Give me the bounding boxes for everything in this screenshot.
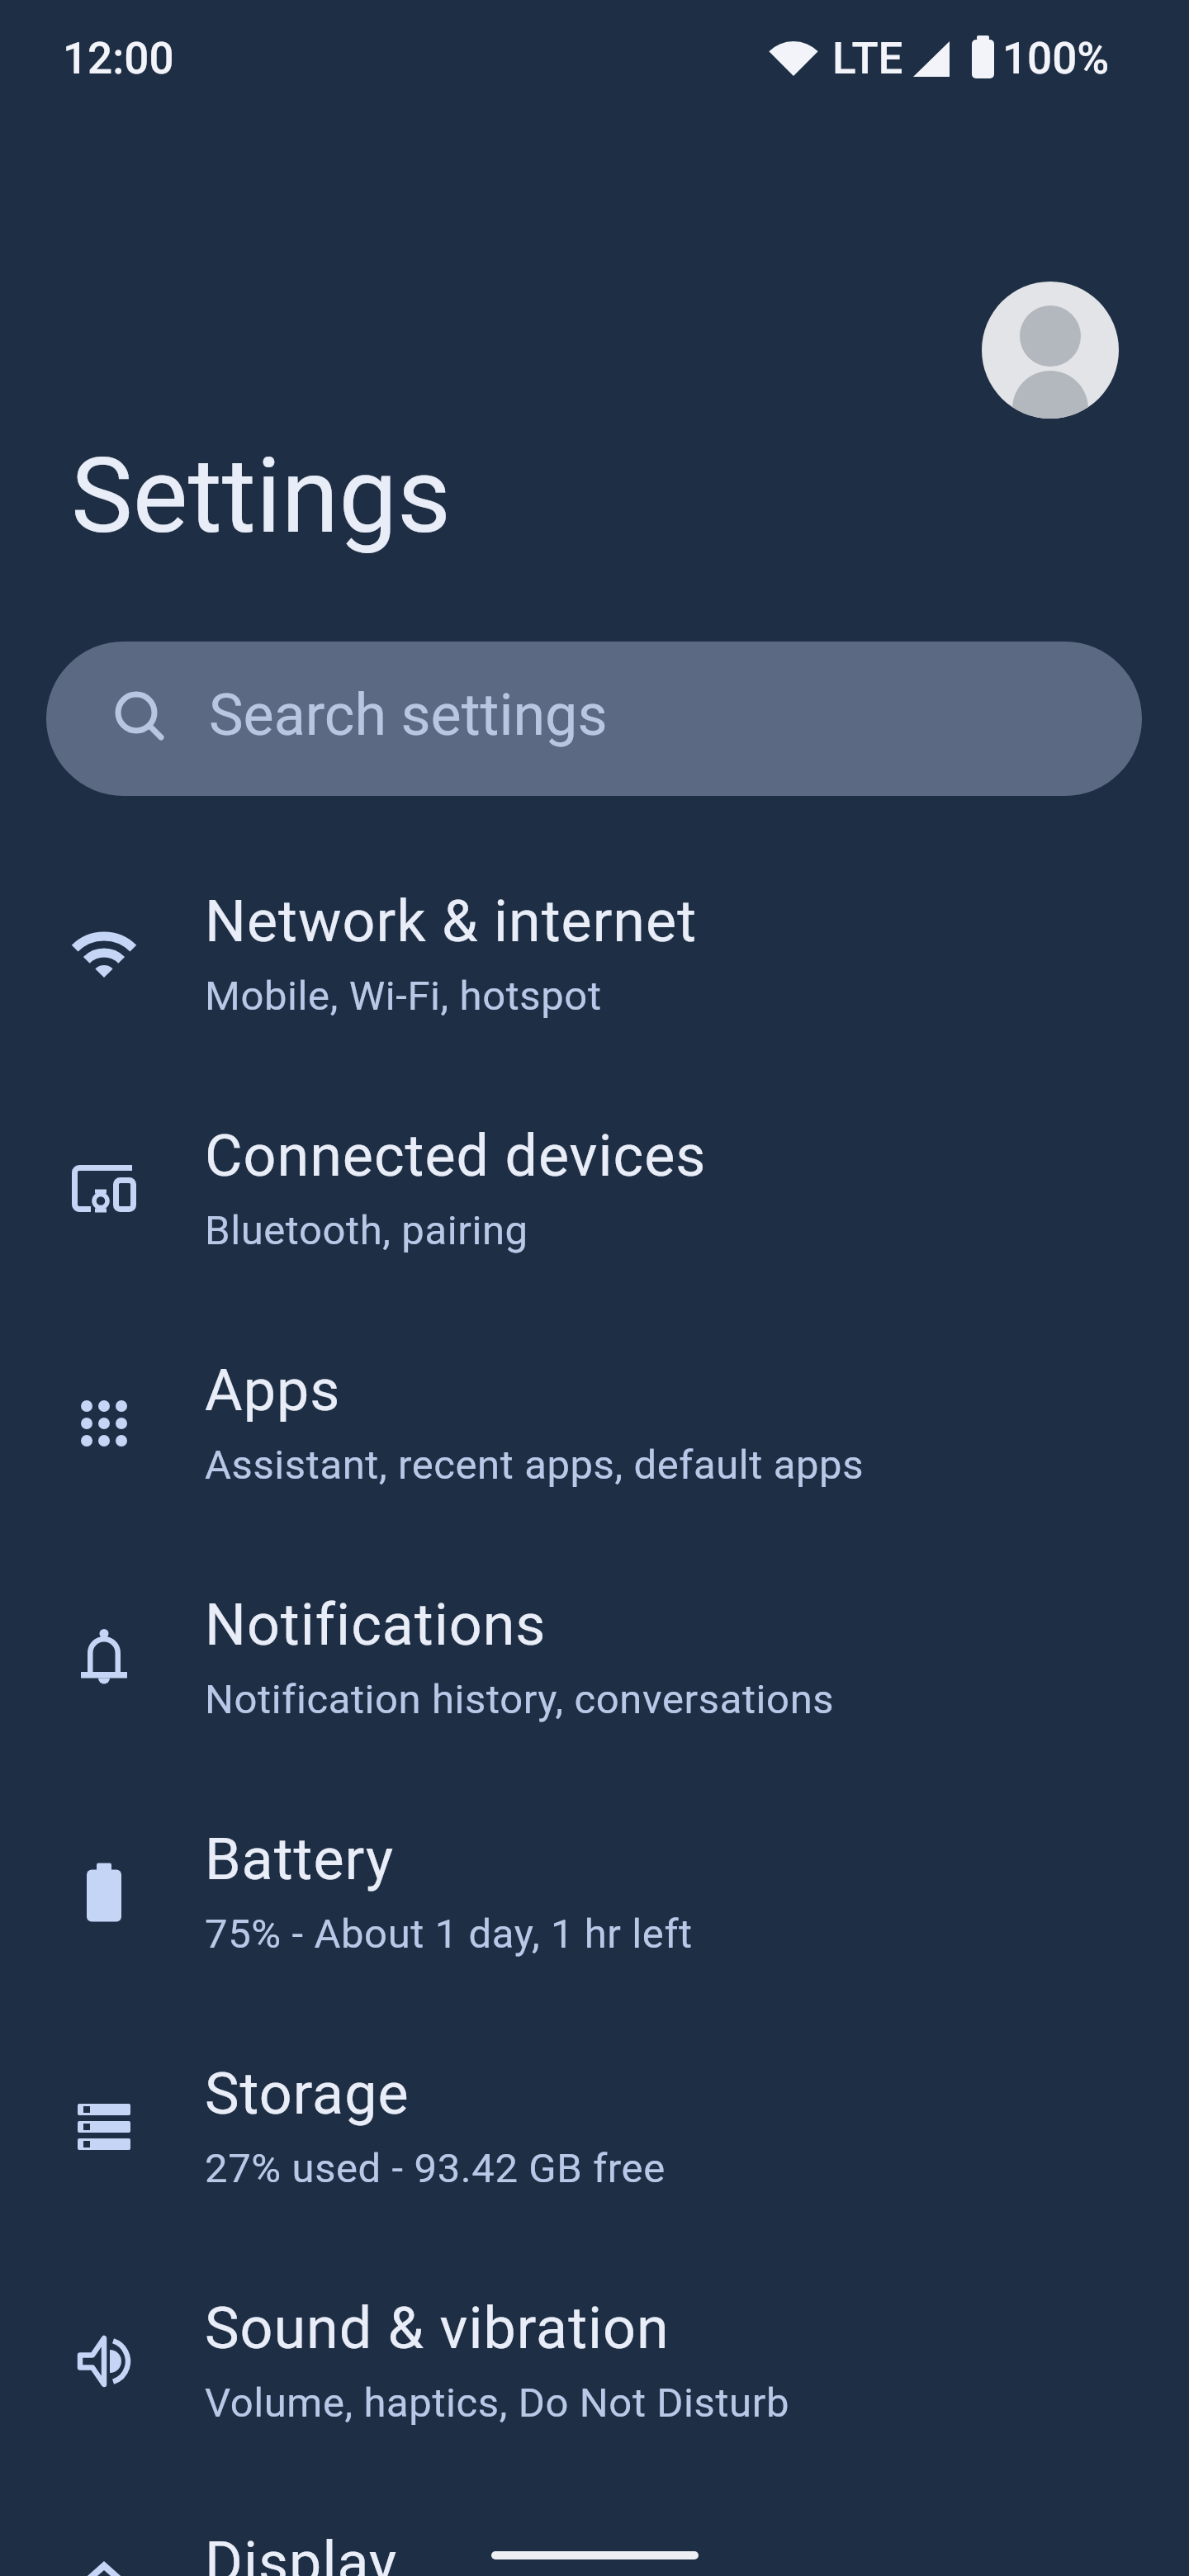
staticText: Apps (205, 1357, 341, 1424)
staticText: 75% - About 1 day, 1 hr left (205, 1911, 693, 1958)
staticText: Connected devices (205, 1122, 707, 1190)
button[interactable]: Notifications (0, 1541, 1189, 1775)
button[interactable]: Apps (0, 1306, 1189, 1541)
button[interactable]: Search settings (46, 642, 1142, 796)
button[interactable]: Storage (0, 2010, 1189, 2244)
staticText: 100% (1002, 33, 1110, 84)
staticText: Storage (205, 2060, 410, 2128)
staticText: LTE (832, 33, 903, 84)
button[interactable]: Display (0, 2479, 1189, 2576)
button[interactable] (982, 282, 1119, 419)
staticText: Notifications (205, 1591, 547, 1659)
staticText: Settings (71, 435, 452, 557)
staticText: Notification history, conversations (205, 1676, 835, 1723)
button[interactable]: Sound & vibration (0, 2244, 1189, 2479)
staticText: Mobile, Wi-Fi, hotspot (205, 973, 602, 1020)
staticText: 27% used - 93.42 GB free (205, 2145, 666, 2192)
button[interactable]: Connected devices (0, 1072, 1189, 1306)
staticText: Network & internet (205, 888, 698, 955)
staticText: Search settings (209, 681, 608, 749)
staticText: Volume, haptics, Do Not Disturb (205, 2379, 790, 2427)
staticText: Battery (205, 1825, 395, 1893)
staticText: Bluetooth, pairing (205, 1207, 528, 1254)
staticText: Display (205, 2529, 398, 2576)
button[interactable]: Network & internet (0, 837, 1189, 1072)
staticText: 12:00 (63, 33, 174, 84)
button[interactable]: Battery (0, 1775, 1189, 2010)
staticText: Sound & vibration (205, 2294, 670, 2362)
staticText: Assistant, recent apps, default apps (205, 1442, 865, 1489)
